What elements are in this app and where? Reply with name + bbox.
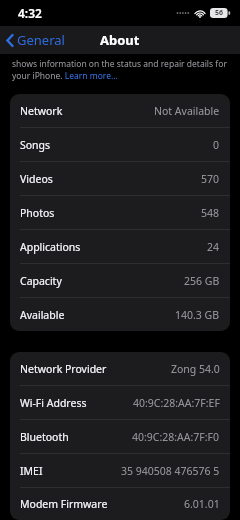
button[interactable]: Bluetooth [10,420,230,454]
staticText: shows information on the status and repa… [12,58,228,82]
staticText: 140.3 GB [175,308,220,322]
staticText: Wi-Fi Address [20,396,87,410]
staticText: About [100,31,140,49]
staticText: Applications [20,240,81,254]
staticText: IMEI [20,464,43,478]
staticText: 0 [213,138,220,152]
button[interactable]: Modem Firmware [10,488,230,520]
staticText: 4:32 [18,5,42,21]
button[interactable]: IMEI [10,454,230,488]
staticText: Zong 54.0 [171,362,220,376]
button[interactable]: Network Provider [10,352,230,386]
staticText: Songs [20,138,51,152]
staticText: 256 GB [184,274,220,288]
button[interactable]: Wi-Fi Address [10,386,230,420]
button[interactable]: Songs [10,128,230,162]
staticText: Modem Firmware [20,497,108,511]
button[interactable]: Photos [10,196,230,230]
staticText: 40:9C:28:AA:7F:F0 [132,430,220,444]
staticText: Bluetooth [20,430,69,444]
staticText: 548 [201,206,220,220]
staticText: 570 [201,172,220,186]
staticText: Videos [20,172,53,186]
staticText: 6.01.01 [184,497,220,511]
staticText: General [17,31,65,49]
staticText: 35 940508 476576 5 [121,464,220,478]
staticText: 40:9C:28:AA:7F:EF [133,396,220,410]
button[interactable]: Applications [10,230,230,264]
staticText: Capacity [20,274,62,288]
staticText: Photos [20,206,55,220]
button[interactable]: General [0,27,73,53]
staticText: Network [20,104,63,118]
staticText: Available [20,308,65,322]
staticText: Network Provider [20,362,107,376]
button[interactable]: Network [10,94,230,128]
staticText: 56 [215,8,224,18]
staticText: Not Available [154,104,220,118]
button[interactable]: Capacity [10,264,230,298]
button[interactable]: Videos [10,162,230,196]
button[interactable]: Available [10,298,230,331]
staticText: 24 [207,240,220,254]
